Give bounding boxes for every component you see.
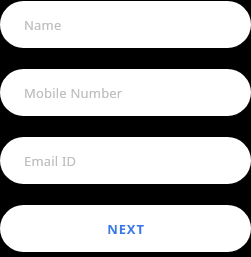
staticText: NEXT: [107, 220, 145, 238]
button[interactable]: Mobile Number: [0, 69, 251, 116]
button[interactable]: Email ID: [0, 137, 251, 184]
staticText: Mobile Number: [24, 84, 123, 102]
button[interactable]: NEXT: [0, 205, 251, 252]
button[interactable]: Name: [0, 1, 251, 48]
staticText: Name: [24, 16, 62, 34]
staticText: Email ID: [24, 152, 77, 170]
